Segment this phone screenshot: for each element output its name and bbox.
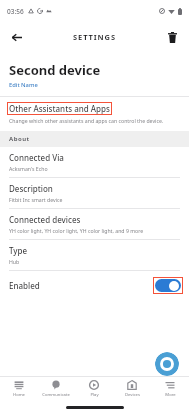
button[interactable]: More bbox=[151, 377, 189, 401]
staticText: Description bbox=[9, 183, 53, 194]
button[interactable]: Enabled bbox=[0, 271, 189, 300]
button[interactable]: Connected devices bbox=[0, 209, 189, 240]
staticText: Other Assistants and Apps bbox=[9, 103, 110, 114]
button[interactable]: Type bbox=[0, 240, 189, 271]
staticText: Fitbit Inc smart device bbox=[9, 196, 63, 203]
button[interactable]: Communicate bbox=[37, 377, 75, 401]
staticText: Connected devices bbox=[9, 214, 81, 225]
staticText: More bbox=[165, 392, 176, 398]
button[interactable]: Devices bbox=[113, 377, 151, 401]
staticText: Play bbox=[90, 392, 99, 398]
staticText: Second device bbox=[9, 61, 101, 79]
staticText: Connected Via bbox=[9, 152, 64, 163]
staticText: Hub bbox=[9, 258, 20, 265]
staticText: Edit Name bbox=[9, 81, 38, 89]
staticText: Enabled bbox=[9, 280, 40, 291]
staticText: Type bbox=[9, 245, 28, 256]
button[interactable]: Edit Name bbox=[9, 81, 38, 89]
button[interactable]: Home bbox=[0, 377, 37, 401]
button[interactable]: Play bbox=[75, 377, 113, 401]
button[interactable]: Back bbox=[3, 24, 29, 50]
staticText: SETTINGS bbox=[73, 32, 116, 42]
button[interactable]: Alexa bbox=[155, 352, 179, 376]
staticText: Change which other assistants and apps c… bbox=[9, 117, 164, 124]
button[interactable]: Other Assistants and Apps bbox=[0, 102, 189, 124]
button[interactable]: Delete bbox=[159, 24, 185, 50]
staticText: Communicate bbox=[42, 392, 70, 398]
button[interactable]: Enabled toggle bbox=[155, 279, 181, 292]
staticText: Devices bbox=[125, 392, 140, 398]
staticText: 03:56 bbox=[7, 7, 24, 16]
button[interactable]: Connected Via bbox=[0, 147, 189, 178]
staticText: Acksman's Echo bbox=[9, 165, 48, 172]
staticText: YH color light, YH color light, YH color… bbox=[9, 227, 144, 234]
button[interactable]: Description bbox=[0, 178, 189, 209]
staticText: About bbox=[9, 135, 30, 143]
staticText: Home bbox=[13, 392, 25, 398]
